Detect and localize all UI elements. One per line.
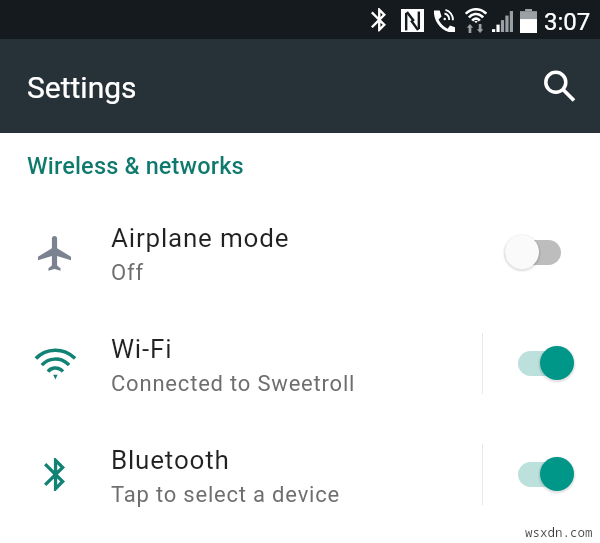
button[interactable]: Wi-Fi: [0, 302, 600, 413]
staticText: Connected to Sweetroll: [111, 371, 356, 397]
button[interactable]: Toggle Bluetooth: [518, 457, 574, 491]
button[interactable]: Toggle Airplane mode: [505, 235, 561, 269]
staticText: Settings: [27, 70, 137, 105]
staticText: 3:07: [544, 8, 591, 36]
button[interactable]: Search: [526, 53, 586, 113]
staticText: Wi-Fi: [111, 334, 173, 364]
staticText: Bluetooth: [111, 445, 230, 475]
staticText: Airplane mode: [111, 223, 290, 253]
staticText: Off: [111, 260, 144, 286]
staticText: Tap to select a device: [111, 482, 341, 508]
staticText: Wireless & networks: [27, 152, 244, 180]
button[interactable]: Bluetooth: [0, 413, 600, 524]
button[interactable]: Airplane mode: [0, 191, 600, 302]
button[interactable]: Toggle Wi-Fi: [518, 346, 574, 380]
staticText: wsxdn.com: [525, 524, 593, 541]
